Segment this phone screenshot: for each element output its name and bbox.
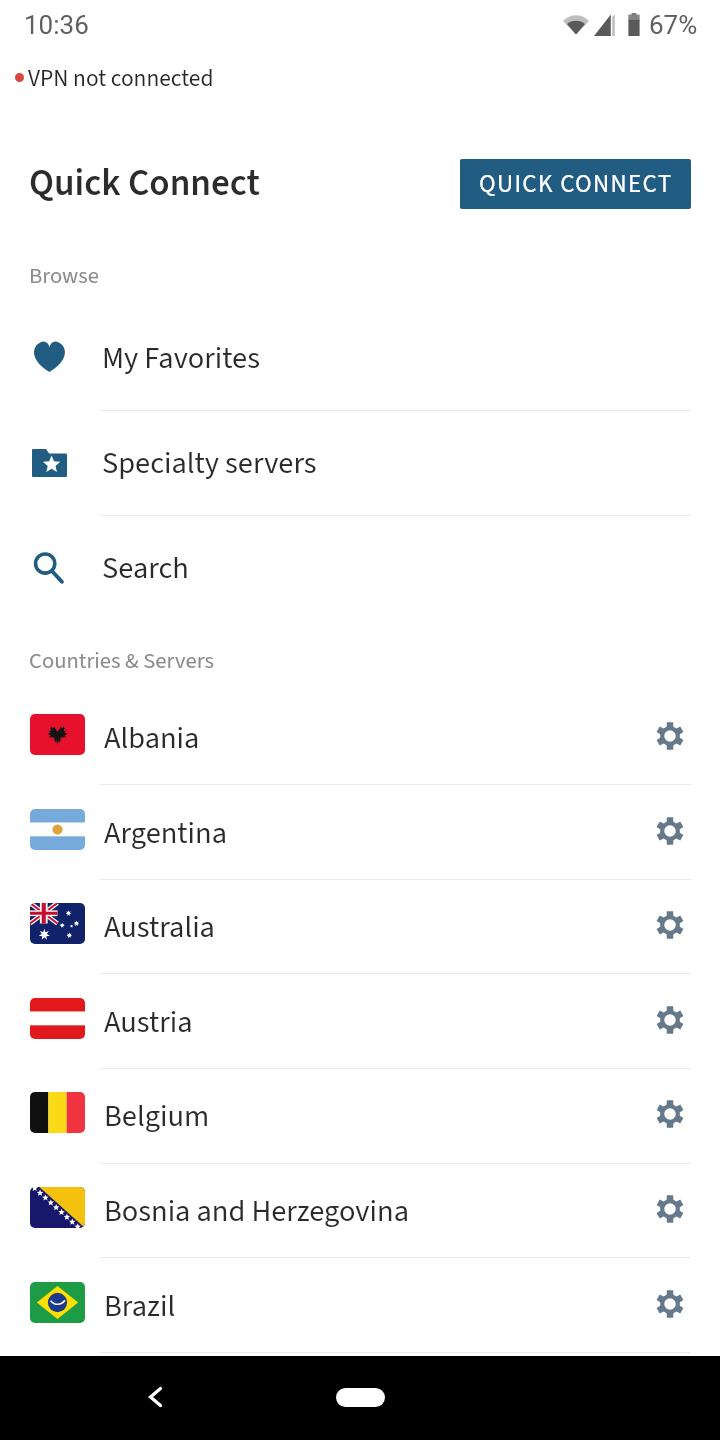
button[interactable]: QUICK CONNECT: [460, 159, 691, 209]
button[interactable]: Settings for Austria: [648, 998, 692, 1042]
button[interactable]: Settings for Brazil: [648, 1282, 692, 1326]
staticText: Quick Connect: [29, 157, 260, 210]
staticText: Argentina: [104, 812, 652, 855]
staticText: 10:36: [24, 10, 89, 40]
button[interactable]: My Favorites: [0, 305, 720, 410]
button[interactable]: Bosnia and Herzegovina: [0, 1162, 720, 1256]
staticText: Search: [102, 547, 189, 590]
button[interactable]: Settings for Bosnia and Herzegovina: [648, 1187, 692, 1231]
button[interactable]: Brazil: [0, 1257, 720, 1351]
button[interactable]: Argentina: [0, 784, 720, 878]
staticText: My Favorites: [102, 337, 260, 380]
button[interactable]: Albania: [0, 689, 720, 783]
staticText: 67%: [649, 10, 698, 40]
staticText: Australia: [104, 906, 652, 949]
staticText: Countries & Servers: [29, 645, 214, 677]
button[interactable]: Settings for Argentina: [648, 809, 692, 853]
staticText: Brazil: [104, 1285, 652, 1328]
button[interactable]: Settings for Belgium: [648, 1092, 692, 1136]
staticText: Specialty servers: [102, 442, 317, 485]
button[interactable]: Specialty servers: [0, 410, 720, 515]
staticText: Austria: [104, 1001, 652, 1044]
staticText: Bosnia and Herzegovina: [104, 1190, 652, 1233]
staticText: VPN not connected: [28, 62, 214, 95]
button[interactable]: Belgium: [0, 1067, 720, 1161]
button[interactable]: Settings for Albania: [648, 714, 692, 758]
button[interactable]: Settings for Australia: [648, 903, 692, 947]
staticText: Belgium: [104, 1095, 652, 1138]
button[interactable]: Home: [336, 1388, 385, 1407]
staticText: Browse: [29, 260, 99, 292]
button[interactable]: Search: [0, 515, 720, 620]
button[interactable]: Australia: [0, 878, 720, 972]
staticText: QUICK CONNECT: [479, 166, 673, 202]
button[interactable]: Austria: [0, 973, 720, 1067]
button[interactable]: Back: [125, 1367, 185, 1427]
staticText: Albania: [104, 717, 652, 760]
